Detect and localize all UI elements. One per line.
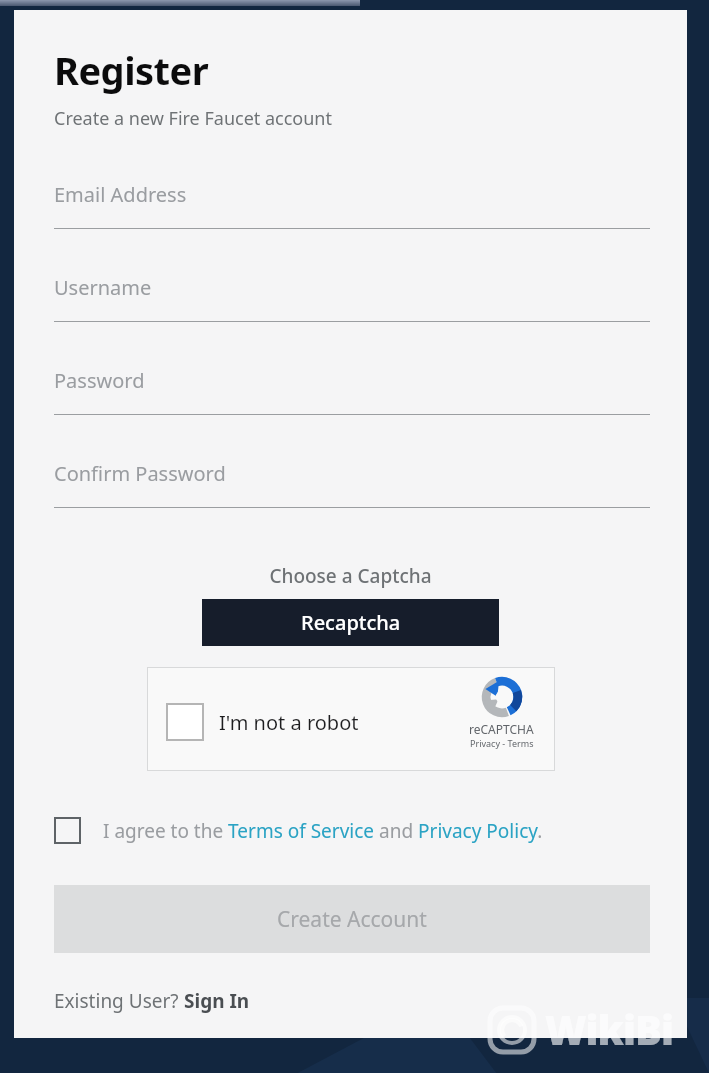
staticText: Choose a Captcha [14,563,687,589]
staticText: Existing User? [54,988,184,1014]
button[interactable]: Sign In [184,988,250,1014]
staticText: Privacy - Terms [470,737,534,749]
button[interactable]: Username [14,260,687,353]
button[interactable]: Recaptcha [202,599,499,646]
button[interactable]: Password [14,353,687,446]
staticText: Email Address [54,181,187,208]
button[interactable]: I'm not a robot [147,667,555,771]
button[interactable]: Confirm Password [14,446,687,539]
staticText: Confirm Password [54,460,226,487]
staticText: reCAPTCHA [469,721,534,737]
staticText: Username [54,274,152,301]
staticText: Sign In [184,988,250,1014]
staticText: I'm not a robot [219,709,359,736]
button[interactable]: Create Account [54,885,650,953]
staticText: WikiBit [545,1002,687,1058]
button[interactable]: I agree to the Terms of Service and Priv… [54,817,647,844]
staticText: Recaptcha [301,609,401,636]
staticText: Create a new Fire Faucet account [54,106,332,131]
staticText: Password [54,367,145,394]
staticText: I agree to the Terms of Service and Priv… [103,818,543,844]
staticText: Create Account [277,905,427,934]
staticText: Register [54,44,209,96]
button[interactable]: Email Address [14,167,687,260]
